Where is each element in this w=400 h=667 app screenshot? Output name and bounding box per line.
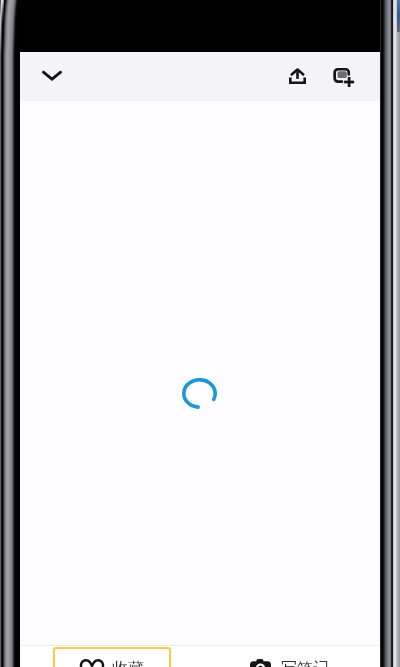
button[interactable]: 收藏 xyxy=(53,647,171,667)
staticText: 收藏 xyxy=(112,659,144,667)
button[interactable]: Share xyxy=(277,56,317,96)
staticText: 写笔记 xyxy=(281,659,329,667)
button[interactable]: Add note xyxy=(323,56,363,96)
button[interactable]: 写笔记 xyxy=(246,647,333,667)
button[interactable]: Collapse xyxy=(32,56,72,96)
